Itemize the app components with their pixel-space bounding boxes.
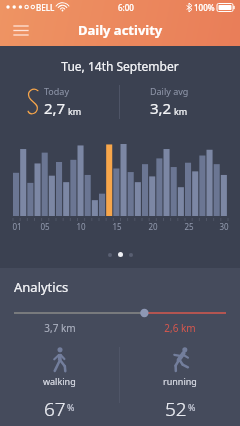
staticText: running bbox=[163, 375, 197, 387]
staticText: BELL bbox=[36, 2, 55, 13]
button[interactable]: Walking versus running distance slider bbox=[0, 307, 240, 319]
staticText: 25 bbox=[183, 221, 195, 232]
button[interactable]: Open navigation menu bbox=[8, 18, 34, 42]
staticText: km bbox=[68, 105, 82, 117]
staticText: 67 bbox=[44, 396, 66, 416]
staticText: 52 bbox=[165, 396, 187, 416]
button[interactable]: Page indicator bbox=[101, 248, 140, 261]
staticText: 15 bbox=[111, 221, 123, 232]
staticText: 30 bbox=[218, 221, 230, 232]
button[interactable]: running 52 percent bbox=[120, 347, 240, 416]
staticText: 2,6 km bbox=[120, 321, 240, 335]
staticText: 05 bbox=[39, 221, 51, 232]
staticText: % bbox=[188, 401, 196, 413]
staticText: 2,7 bbox=[44, 98, 66, 118]
staticText: 3,7 km bbox=[0, 321, 120, 335]
staticText: Daily avg bbox=[150, 85, 189, 97]
staticText: 01 bbox=[11, 221, 23, 232]
staticText: Daily activity bbox=[78, 21, 163, 39]
staticText: Tue, 14th September bbox=[0, 58, 240, 74]
staticText: 100% bbox=[194, 2, 215, 13]
button[interactable]: walking 67 percent bbox=[0, 347, 119, 416]
staticText: % bbox=[67, 401, 75, 413]
staticText: 3,2 bbox=[150, 98, 172, 118]
staticText: 6:00 bbox=[118, 2, 134, 13]
staticText: km bbox=[174, 105, 188, 117]
staticText: Analytics bbox=[14, 278, 69, 296]
staticText: Today bbox=[44, 85, 69, 97]
staticText: 20 bbox=[147, 221, 159, 232]
staticText: 10 bbox=[75, 221, 87, 232]
staticText: walking bbox=[43, 375, 76, 387]
